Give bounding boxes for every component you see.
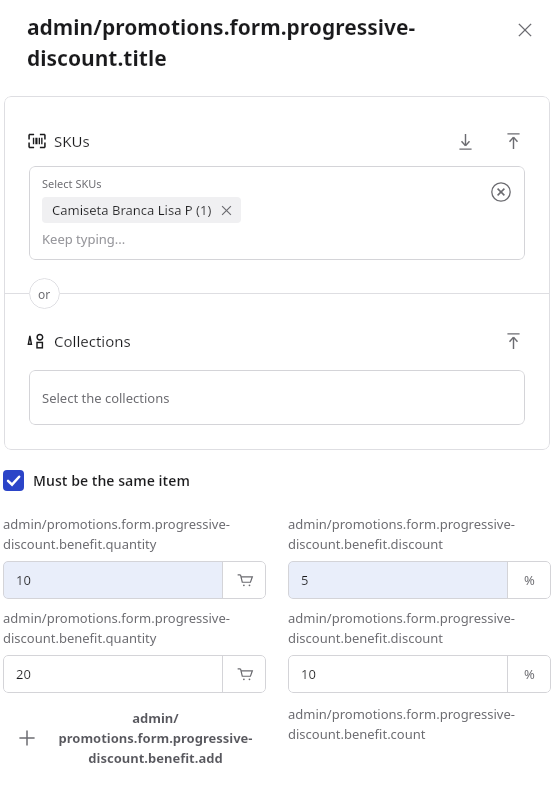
button[interactable]: 10 xyxy=(288,655,551,693)
staticText: admin/promotions.form.progressive- disco… xyxy=(27,13,512,72)
button[interactable]: 20 xyxy=(3,655,266,693)
staticText: 10 xyxy=(16,571,31,589)
button[interactable]: Select the collections xyxy=(29,370,525,425)
staticText: admin/promotions.form.progressive- disco… xyxy=(288,515,515,553)
button[interactable]: 10 xyxy=(3,561,266,599)
staticText: admin/promotions.form.progressive- disco… xyxy=(3,515,230,553)
staticText: SKUs xyxy=(54,131,90,151)
staticText: 10 xyxy=(301,665,316,683)
button[interactable]: Select SKUs xyxy=(29,166,525,260)
staticText: Collections xyxy=(54,331,131,351)
button[interactable]: Camiseta Branca Lisa P (1) xyxy=(42,197,241,223)
button[interactable]: 5 xyxy=(288,561,551,599)
staticText: admin/promotions.form.progressive- disco… xyxy=(288,705,515,743)
button[interactable]: Close xyxy=(512,17,538,43)
staticText: admin/promotions.form.progressive- disco… xyxy=(45,709,266,767)
staticText: admin/promotions.form.progressive- disco… xyxy=(288,609,515,647)
staticText: or xyxy=(38,286,51,302)
staticText: Must be the same item xyxy=(33,471,190,490)
staticText: % xyxy=(524,665,535,683)
staticText: Select SKUs xyxy=(42,176,102,191)
button[interactable]: admin/promotions.form.progressive- disco… xyxy=(3,705,266,771)
staticText: % xyxy=(524,571,535,589)
button[interactable]: Must be the same item xyxy=(3,468,198,493)
staticText: 5 xyxy=(301,571,309,589)
button[interactable]: Clear selection xyxy=(491,182,511,202)
button[interactable]: Download SKUs xyxy=(450,126,480,156)
staticText: 20 xyxy=(16,665,31,683)
staticText: Select the collections xyxy=(42,389,170,407)
staticText: admin/promotions.form.progressive- disco… xyxy=(3,609,230,647)
staticText: Keep typing... xyxy=(42,230,126,248)
button[interactable]: Upload collections xyxy=(498,326,528,356)
button[interactable]: Upload SKUs xyxy=(498,126,528,156)
staticText: Camiseta Branca Lisa P (1) xyxy=(52,201,212,219)
